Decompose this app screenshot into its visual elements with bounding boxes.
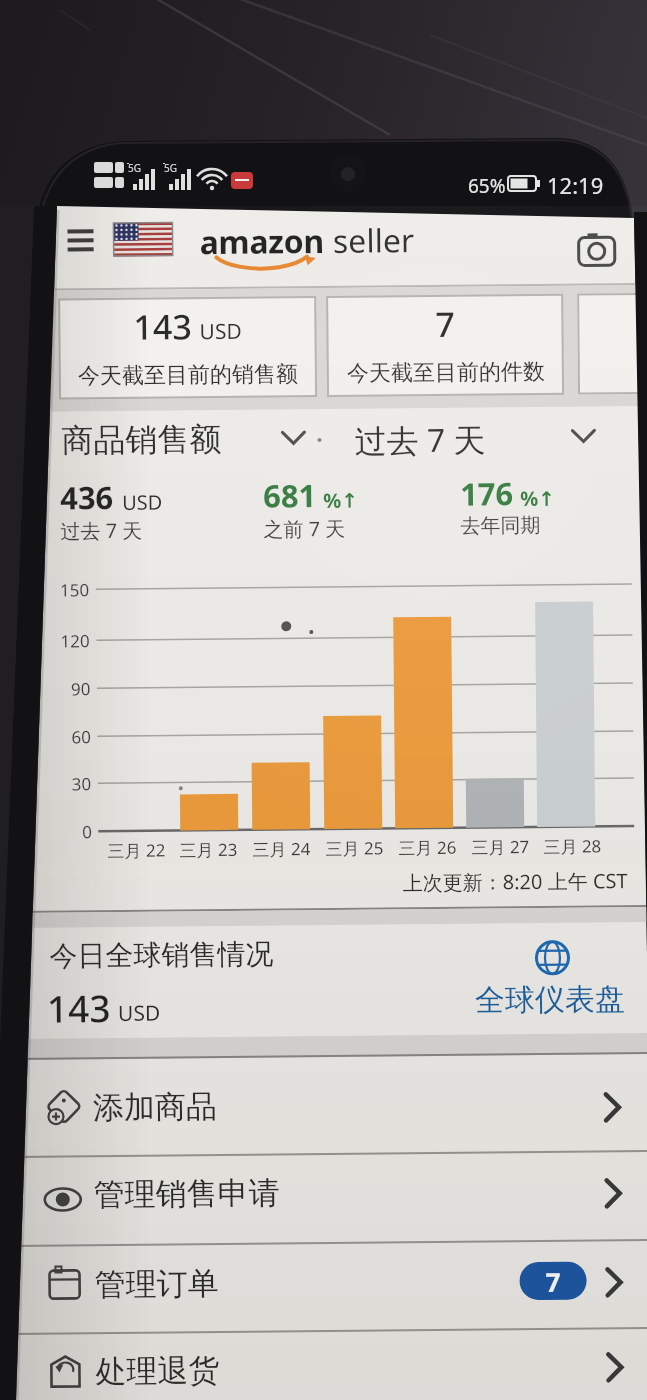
- staticText: USD: [199, 317, 243, 346]
- staticText: 30: [72, 772, 92, 795]
- staticText: 143: [133, 303, 193, 350]
- button[interactable]: 全球仪表盘: [475, 980, 625, 1019]
- button[interactable]: [67, 229, 108, 265]
- button[interactable]: [3, 1054, 647, 1157]
- staticText: 7: [545, 1264, 561, 1299]
- staticText: 上次更新：8:20 上午 CST: [403, 867, 628, 896]
- staticText: 65%: [468, 173, 506, 199]
- staticText: USD: [122, 488, 163, 516]
- button[interactable]: [534, 939, 575, 979]
- staticText: 今天截至目前的销售额: [78, 360, 298, 390]
- staticText: 添加商品: [93, 1087, 217, 1127]
- staticText: 过去 7 天: [60, 517, 142, 544]
- staticText: 三月 26: [398, 836, 456, 859]
- staticText: 之前 7 天: [263, 515, 345, 543]
- staticText: seller: [324, 218, 415, 263]
- staticText: 管理订单: [94, 1264, 219, 1304]
- staticText: USD: [118, 999, 161, 1028]
- staticText: 7: [435, 301, 456, 347]
- staticText: 今天截至目前的件数: [347, 358, 545, 388]
- button[interactable]: [5, 1241, 647, 1334]
- staticText: 管理销售申请: [94, 1173, 280, 1214]
- staticText: %↑: [323, 487, 358, 514]
- staticText: 三月 24: [252, 837, 310, 861]
- staticText: 150: [60, 578, 90, 601]
- button[interactable]: [350, 409, 599, 458]
- staticText: 176: [460, 472, 514, 515]
- staticText: 681: [263, 474, 317, 517]
- staticText: amazon: [199, 219, 325, 264]
- staticText: 0: [82, 820, 92, 843]
- staticText: 90: [71, 677, 91, 700]
- staticText: 60: [71, 725, 91, 748]
- staticText: 5G: [164, 161, 177, 175]
- staticText: 三月 25: [325, 836, 383, 860]
- staticText: 去年同期: [460, 513, 540, 539]
- staticText: 三月 27: [471, 835, 529, 859]
- button[interactable]: [57, 412, 310, 460]
- staticText: 143: [47, 982, 111, 1033]
- button[interactable]: 143: [60, 298, 315, 397]
- staticText: 120: [60, 629, 90, 652]
- staticText: 商品销售额: [61, 419, 222, 460]
- button[interactable]: 7: [328, 296, 562, 395]
- staticText: %↑: [520, 485, 555, 512]
- staticText: 12:19: [547, 170, 604, 200]
- staticText: 三月 28: [543, 834, 601, 858]
- button[interactable]: [4, 1152, 647, 1246]
- staticText: 处理退货: [95, 1351, 220, 1391]
- staticText: 今日全球销售情况: [49, 936, 274, 974]
- staticText: 5G: [128, 161, 141, 175]
- staticText: 三月 22: [107, 838, 165, 862]
- button[interactable]: [6, 1329, 647, 1400]
- button[interactable]: [579, 295, 642, 392]
- button[interactable]: [575, 231, 618, 268]
- staticText: 全球仪表盘: [475, 980, 625, 1019]
- staticText: 过去 7 天: [354, 417, 486, 463]
- staticText: 436: [60, 476, 114, 518]
- staticText: 三月 23: [179, 838, 237, 861]
